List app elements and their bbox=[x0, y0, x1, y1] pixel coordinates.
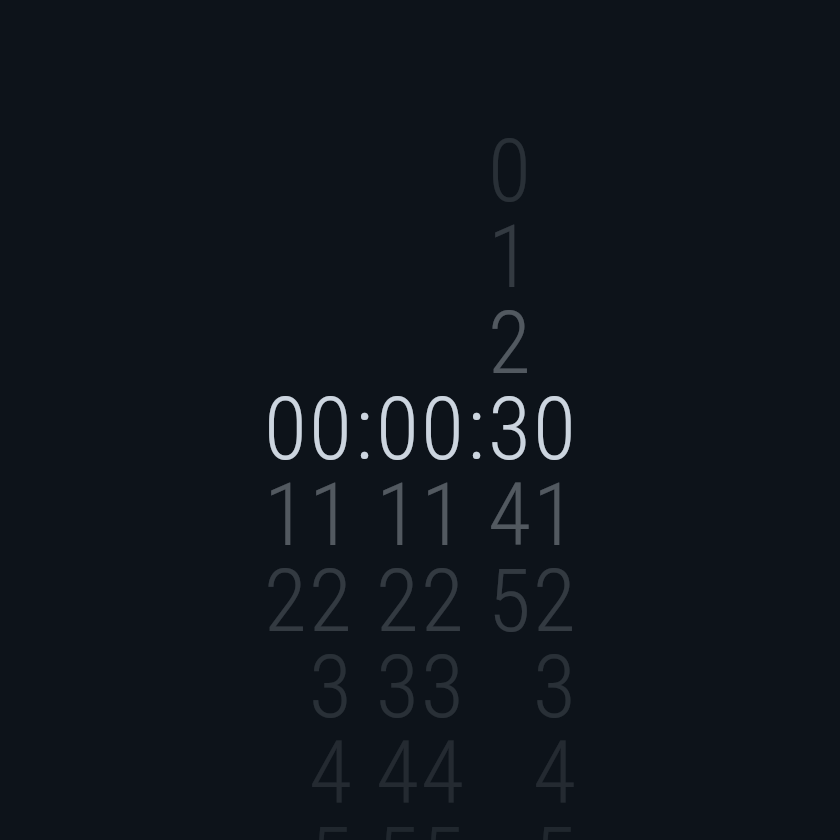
button[interactable]: Minutes tens digit bbox=[375, 0, 420, 840]
staticText: 5 bbox=[308, 807, 353, 840]
staticText: 2 bbox=[532, 549, 577, 635]
staticText: 3 bbox=[375, 635, 420, 721]
staticText: 3 bbox=[308, 635, 353, 721]
staticText: 1 bbox=[487, 205, 532, 291]
staticText: 0 bbox=[308, 377, 353, 463]
staticText: 5 bbox=[420, 807, 465, 840]
staticText: 1 bbox=[420, 463, 465, 549]
button[interactable]: Hours units digit bbox=[308, 0, 353, 840]
staticText: 4 bbox=[532, 721, 577, 807]
staticText: : bbox=[465, 377, 487, 463]
staticText: 0 bbox=[375, 377, 420, 463]
staticText: 4 bbox=[308, 721, 353, 807]
staticText: 3 bbox=[532, 635, 577, 721]
staticText: 1 bbox=[375, 463, 420, 549]
staticText: 0 bbox=[487, 119, 532, 205]
staticText: 3 bbox=[420, 635, 465, 721]
button[interactable]: Minutes units digit bbox=[420, 0, 465, 840]
staticText: 2 bbox=[308, 549, 353, 635]
staticText: 0 bbox=[263, 377, 308, 463]
staticText: 1 bbox=[308, 463, 353, 549]
staticText: 2 bbox=[375, 549, 420, 635]
staticText: 3 bbox=[487, 377, 532, 463]
staticText: 5 bbox=[487, 549, 532, 635]
staticText: : bbox=[353, 377, 375, 463]
staticText: 5 bbox=[532, 807, 577, 840]
staticText: 4 bbox=[420, 721, 465, 807]
staticText: 1 bbox=[263, 463, 308, 549]
staticText: 2 bbox=[487, 291, 532, 377]
staticText: 4 bbox=[487, 463, 532, 549]
button[interactable]: Seconds tens digit bbox=[487, 0, 532, 840]
staticText: 4 bbox=[375, 721, 420, 807]
button[interactable]: Seconds units digit bbox=[532, 0, 577, 840]
button[interactable]: Hours tens digit bbox=[263, 0, 308, 840]
staticText: 0 bbox=[420, 377, 465, 463]
staticText: 2 bbox=[420, 549, 465, 635]
staticText: 5 bbox=[375, 807, 420, 840]
staticText: 2 bbox=[263, 549, 308, 635]
staticText: 1 bbox=[532, 463, 577, 549]
staticText: 0 bbox=[532, 377, 577, 463]
